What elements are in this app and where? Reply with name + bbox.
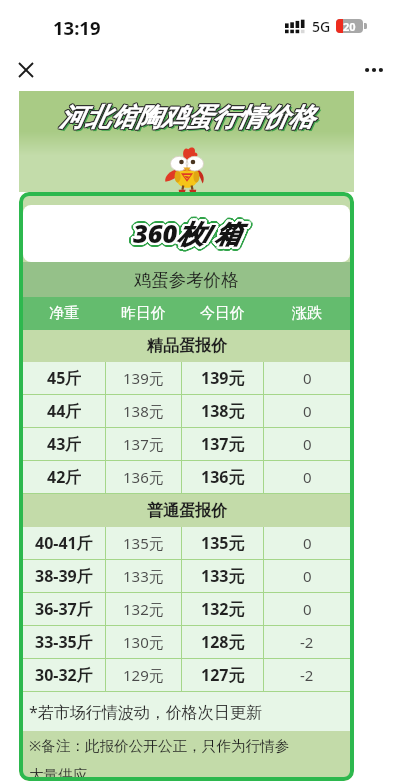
staticText: 30-32斤: [35, 664, 93, 686]
staticText: 360枚/箱: [132, 212, 240, 247]
button[interactable]: 44斤: [23, 395, 350, 427]
staticText: 净重: [49, 304, 79, 323]
staticText: 135元: [201, 532, 245, 554]
staticText: 136元: [201, 466, 245, 488]
staticText: 360枚/箱: [133, 212, 241, 247]
staticText: 360枚/箱: [137, 217, 245, 252]
staticText: 127元: [201, 664, 245, 686]
staticText: 360枚/箱: [135, 217, 243, 252]
staticText: 360枚/箱: [129, 216, 237, 251]
staticText: 40-41斤: [35, 532, 93, 554]
staticText: 河北馆陶鸡蛋行情价格: [59, 101, 314, 133]
staticText: 360枚/箱: [130, 214, 238, 249]
staticText: 128元: [201, 631, 245, 653]
staticText: 河北馆陶鸡蛋行情价格: [60, 101, 315, 133]
staticText: 360枚/箱: [134, 220, 242, 255]
staticText: 普通蛋报价: [147, 501, 227, 521]
staticText: 38-39斤: [35, 565, 93, 587]
staticText: 360枚/箱: [135, 219, 243, 254]
staticText: 132元: [123, 599, 164, 619]
staticText: 360枚/箱: [135, 213, 243, 248]
staticText: 0: [303, 434, 312, 454]
staticText: 360枚/箱: [134, 214, 242, 249]
staticText: 129元: [123, 665, 164, 685]
staticText: 360枚/箱: [131, 213, 239, 248]
staticText: 33-35斤: [35, 631, 93, 653]
staticText: 河北馆陶鸡蛋行情价格: [59, 102, 314, 134]
staticText: 139元: [201, 367, 245, 389]
button[interactable]: 38-39斤: [23, 560, 350, 592]
staticText: 13:19: [53, 15, 101, 40]
button[interactable]: 43斤: [23, 428, 350, 460]
staticText: 360枚/箱: [131, 215, 239, 250]
staticText: 0: [303, 467, 312, 487]
staticText: ※备注：此报价公开公正，只作为行情参 大量供应: [29, 735, 290, 781]
staticText: 河北馆陶鸡蛋行情价格: [59, 102, 314, 134]
staticText: 44斤: [47, 400, 82, 422]
staticText: 360枚/箱: [135, 217, 243, 252]
button[interactable]: 36-37斤: [23, 593, 350, 625]
staticText: 河北馆陶鸡蛋行情价格: [59, 100, 314, 132]
staticText: 133元: [201, 565, 245, 587]
staticText: 河北馆陶鸡蛋行情价格: [60, 101, 315, 133]
button[interactable]: 42斤: [23, 461, 350, 493]
staticText: 河北馆陶鸡蛋行情价格: [59, 100, 314, 132]
staticText: -2: [300, 665, 314, 685]
staticText: 0: [303, 533, 312, 553]
staticText: 43斤: [47, 433, 82, 455]
staticText: 360枚/箱: [136, 219, 244, 254]
button[interactable]: 30-32斤: [23, 659, 350, 691]
staticText: 0: [303, 368, 312, 388]
staticText: 36-37斤: [35, 598, 93, 620]
staticText: 360枚/箱: [132, 214, 240, 249]
button[interactable]: More options: [357, 53, 391, 87]
staticText: 0: [303, 401, 312, 421]
staticText: 今日价: [200, 304, 245, 323]
staticText: 360枚/箱: [133, 220, 241, 255]
button[interactable]: 33-35斤: [23, 626, 350, 658]
staticText: *若市场行情波动，价格次日更新: [29, 701, 262, 723]
staticText: 360枚/箱: [131, 219, 239, 254]
staticText: 河北馆陶鸡蛋行情价格: [59, 102, 314, 134]
staticText: 45斤: [47, 367, 82, 389]
staticText: 360枚/箱: [131, 215, 239, 250]
staticText: 360枚/箱: [131, 217, 239, 252]
button[interactable]: 45斤: [23, 362, 350, 394]
staticText: 360枚/箱: [136, 214, 244, 249]
staticText: 0: [303, 599, 312, 619]
staticText: 360枚/箱: [130, 218, 238, 253]
staticText: 360枚/箱: [132, 218, 240, 253]
staticText: 360枚/箱: [133, 214, 241, 249]
button[interactable]: Close: [9, 53, 43, 87]
button[interactable]: 40-41斤: [23, 527, 350, 559]
staticText: 360枚/箱: [129, 217, 237, 252]
staticText: 136元: [123, 467, 164, 487]
staticText: 360枚/箱: [133, 218, 241, 253]
staticText: 360枚/箱: [129, 215, 237, 250]
staticText: 138元: [201, 400, 245, 422]
staticText: 360枚/箱: [132, 214, 240, 249]
staticText: 河北馆陶鸡蛋行情价格: [59, 100, 314, 132]
staticText: 河北馆陶鸡蛋行情价格: [58, 101, 313, 133]
staticText: 河北馆陶鸡蛋行情价格: [58, 102, 313, 134]
staticText: 133元: [123, 566, 164, 586]
staticText: 360枚/箱: [134, 218, 242, 253]
staticText: 360枚/箱: [137, 216, 245, 251]
staticText: 河北馆陶鸡蛋行情价格: [60, 100, 315, 132]
staticText: 360枚/箱: [132, 218, 240, 253]
staticText: 鸡蛋参考价格: [134, 269, 239, 291]
staticText: 360枚/箱: [134, 212, 242, 247]
staticText: 20: [343, 19, 356, 33]
staticText: 138元: [123, 401, 164, 421]
staticText: 河北馆陶鸡蛋行情价格: [60, 102, 315, 134]
staticText: 139元: [123, 368, 164, 388]
staticText: 河北馆陶鸡蛋行情价格: [60, 101, 315, 133]
staticText: 360枚/箱: [134, 218, 242, 253]
staticText: 360枚/箱: [134, 214, 242, 249]
staticText: 360枚/箱: [136, 218, 244, 253]
staticText: 河北馆陶鸡蛋行情价格: [58, 101, 313, 133]
staticText: 42斤: [47, 466, 82, 488]
staticText: 130元: [123, 632, 164, 652]
staticText: 360枚/箱: [135, 215, 243, 250]
staticText: 360枚/箱: [132, 220, 240, 255]
